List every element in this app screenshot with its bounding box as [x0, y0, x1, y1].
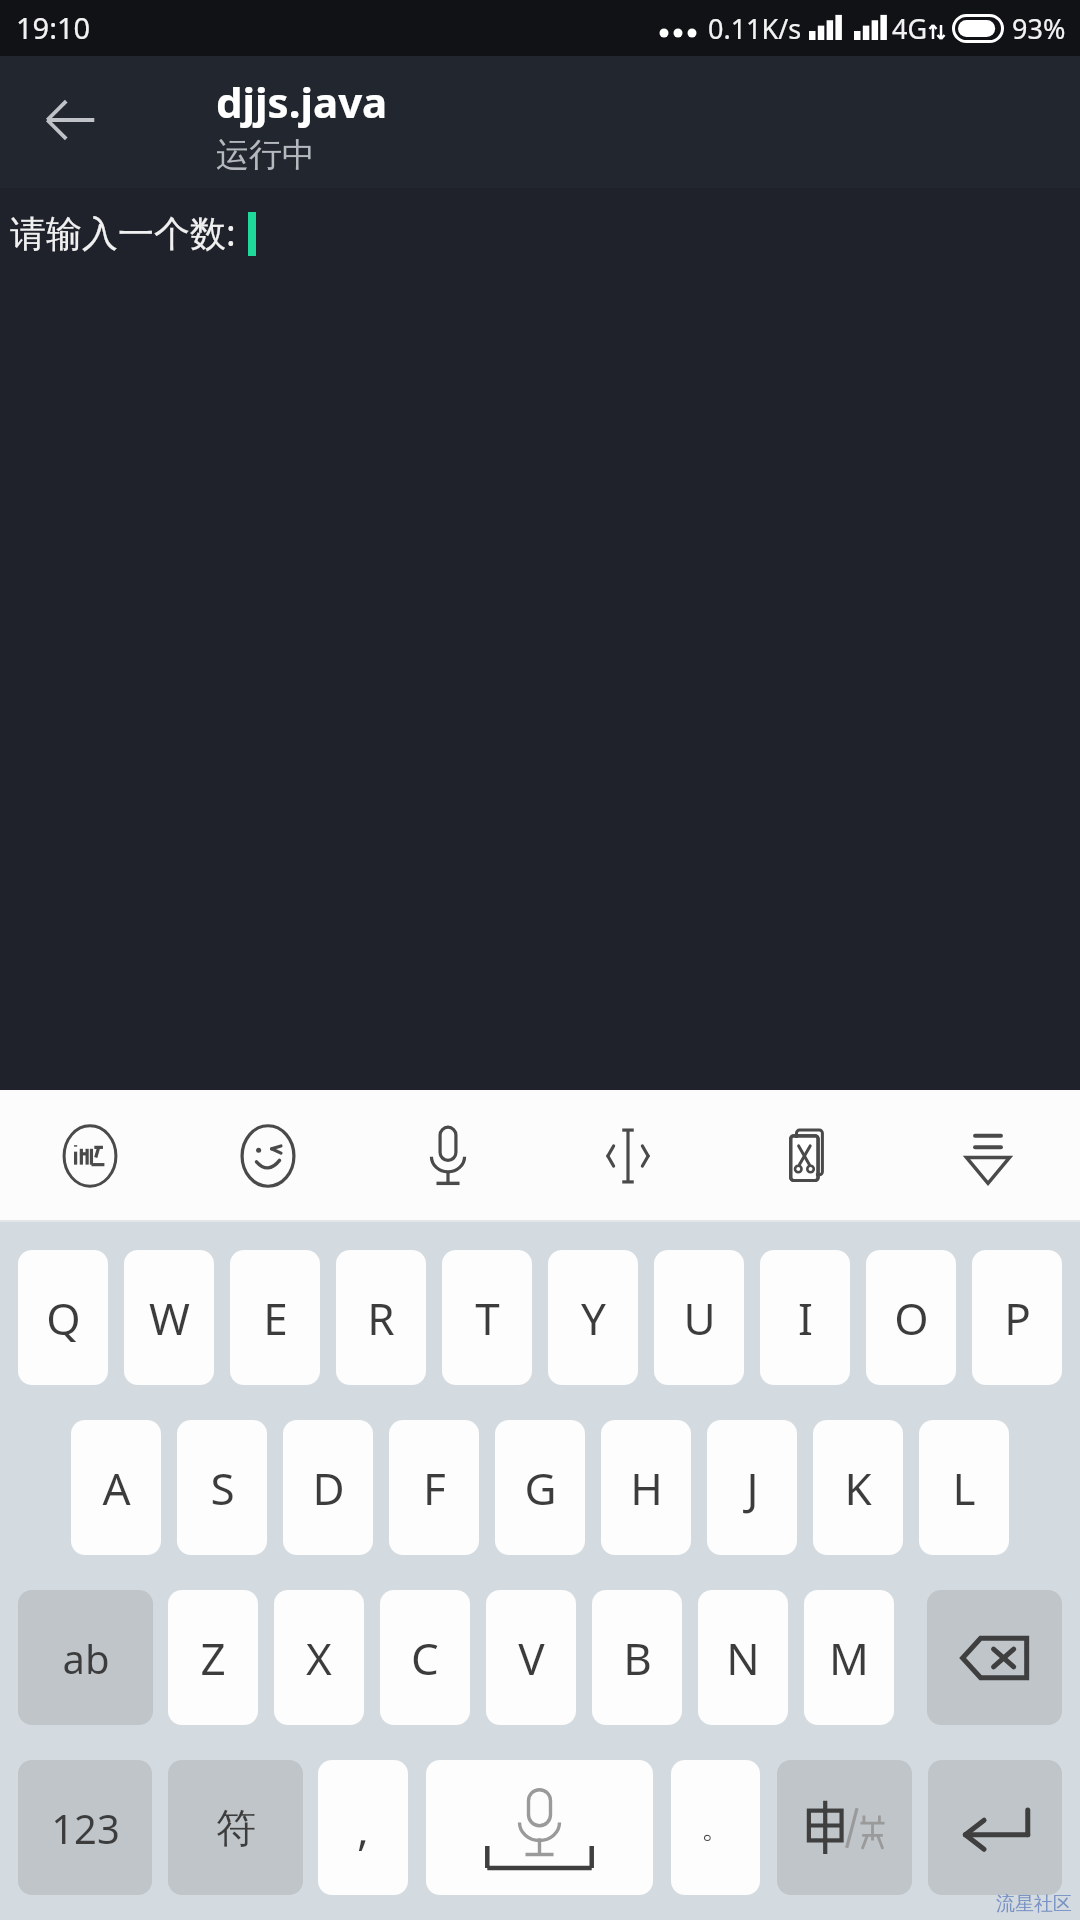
button[interactable]: O: [866, 1250, 956, 1385]
staticText: I: [798, 1288, 813, 1348]
button[interactable]: Z: [168, 1590, 258, 1725]
staticText: E: [263, 1288, 288, 1348]
button[interactable]: W: [124, 1250, 214, 1385]
button[interactable]: ,: [318, 1760, 408, 1895]
button[interactable]: V: [486, 1590, 576, 1725]
button[interactable]: P: [972, 1250, 1062, 1385]
staticText: L: [952, 1458, 976, 1518]
staticText: T: [475, 1288, 500, 1348]
staticText: J: [746, 1458, 759, 1518]
staticText: ,: [357, 1798, 369, 1858]
button[interactable]: Clipboard: [758, 1106, 858, 1206]
staticText: S: [210, 1458, 235, 1518]
button[interactable]: Edit: [578, 1106, 678, 1206]
button[interactable]: G: [495, 1420, 585, 1555]
staticText: U: [683, 1288, 716, 1348]
button[interactable]: I: [760, 1250, 850, 1385]
button[interactable]: Input method: [40, 1106, 140, 1206]
staticText: V: [518, 1628, 545, 1688]
staticText: N: [726, 1628, 760, 1688]
button[interactable]: E: [230, 1250, 320, 1385]
button[interactable]: A: [71, 1420, 161, 1555]
button[interactable]: U: [654, 1250, 744, 1385]
staticText: 运行中: [216, 134, 315, 176]
staticText: Z: [200, 1628, 226, 1688]
button[interactable]: 符: [168, 1760, 303, 1895]
staticText: F: [423, 1458, 446, 1518]
staticText: B: [623, 1628, 652, 1688]
button[interactable]: Voice input: [398, 1106, 498, 1206]
staticText: G: [524, 1458, 557, 1518]
button[interactable]: Q: [18, 1250, 108, 1385]
staticText: M: [829, 1628, 869, 1688]
button[interactable]: D: [283, 1420, 373, 1555]
button[interactable]: ab: [18, 1590, 153, 1725]
staticText: Q: [46, 1288, 81, 1348]
button[interactable]: R: [336, 1250, 426, 1385]
button[interactable]: S: [177, 1420, 267, 1555]
button[interactable]: K: [813, 1420, 903, 1555]
button[interactable]: Y: [548, 1250, 638, 1385]
staticText: djjs.java: [216, 73, 388, 130]
button[interactable]: C: [380, 1590, 470, 1725]
button[interactable]: L: [919, 1420, 1009, 1555]
staticText: H: [630, 1458, 663, 1518]
button[interactable]: Emoji: [218, 1106, 318, 1206]
button[interactable]: H: [601, 1420, 691, 1555]
staticText: 符: [216, 1803, 256, 1853]
button[interactable]: T: [442, 1250, 532, 1385]
staticText: 流星社区: [996, 1892, 1072, 1916]
button[interactable]: J: [707, 1420, 797, 1555]
button[interactable]: X: [274, 1590, 364, 1725]
button[interactable]: Backspace: [927, 1590, 1062, 1725]
staticText: R: [367, 1288, 395, 1348]
staticText: C: [411, 1628, 439, 1688]
button[interactable]: F: [389, 1420, 479, 1555]
staticText: D: [312, 1458, 345, 1518]
staticText: 0.11K/s: [708, 10, 802, 47]
button[interactable]: Enter: [928, 1760, 1062, 1895]
button[interactable]: Chinese English toggle: [777, 1760, 912, 1895]
staticText: 19:10: [16, 8, 91, 47]
staticText: X: [306, 1628, 332, 1688]
button[interactable]: Back: [26, 76, 114, 164]
button[interactable]: B: [592, 1590, 682, 1725]
button[interactable]: M: [804, 1590, 894, 1725]
staticText: W: [149, 1288, 190, 1348]
staticText: 4G: [892, 10, 928, 47]
staticText: K: [844, 1458, 872, 1518]
staticText: 请输入一个数:: [10, 208, 236, 257]
staticText: A: [102, 1458, 131, 1518]
staticText: P: [1004, 1288, 1031, 1348]
staticText: O: [894, 1288, 929, 1348]
button[interactable]: N: [698, 1590, 788, 1725]
button[interactable]: 。: [671, 1760, 760, 1895]
button[interactable]: Hide keyboard: [938, 1106, 1038, 1206]
staticText: ab: [62, 1631, 110, 1685]
staticText: 。: [701, 1809, 731, 1847]
staticText: 123: [51, 1801, 120, 1855]
button[interactable]: Space: [426, 1760, 653, 1895]
staticText: Y: [581, 1288, 606, 1348]
staticText: 93%: [1012, 10, 1066, 47]
button[interactable]: 123: [18, 1760, 152, 1895]
